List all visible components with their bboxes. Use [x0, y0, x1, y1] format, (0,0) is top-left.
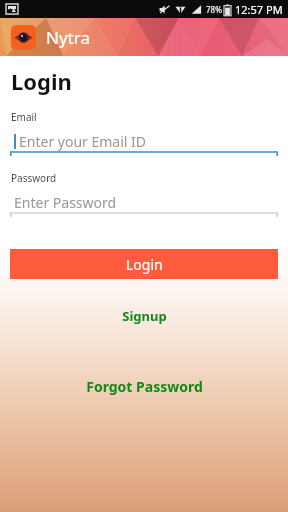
staticText: Email — [11, 110, 37, 124]
staticText: 78% — [206, 4, 222, 15]
button[interactable]: Enter your Email ID — [10, 130, 278, 157]
staticText: Forgot Password — [86, 377, 203, 396]
staticText: Login — [126, 255, 163, 274]
staticText: 12:57 PM — [235, 2, 283, 17]
button[interactable]: Forgot Password — [0, 371, 288, 401]
staticText: Nytra — [46, 26, 90, 49]
staticText: Password — [11, 171, 57, 185]
button[interactable]: Login — [10, 249, 278, 279]
staticText: Login — [11, 66, 72, 96]
staticText: Enter your Email ID — [19, 132, 147, 151]
button[interactable]: Enter Password — [10, 191, 278, 218]
staticText: Enter Password — [14, 193, 117, 212]
button[interactable]: Signup — [0, 301, 288, 331]
staticText: Signup — [122, 307, 167, 325]
